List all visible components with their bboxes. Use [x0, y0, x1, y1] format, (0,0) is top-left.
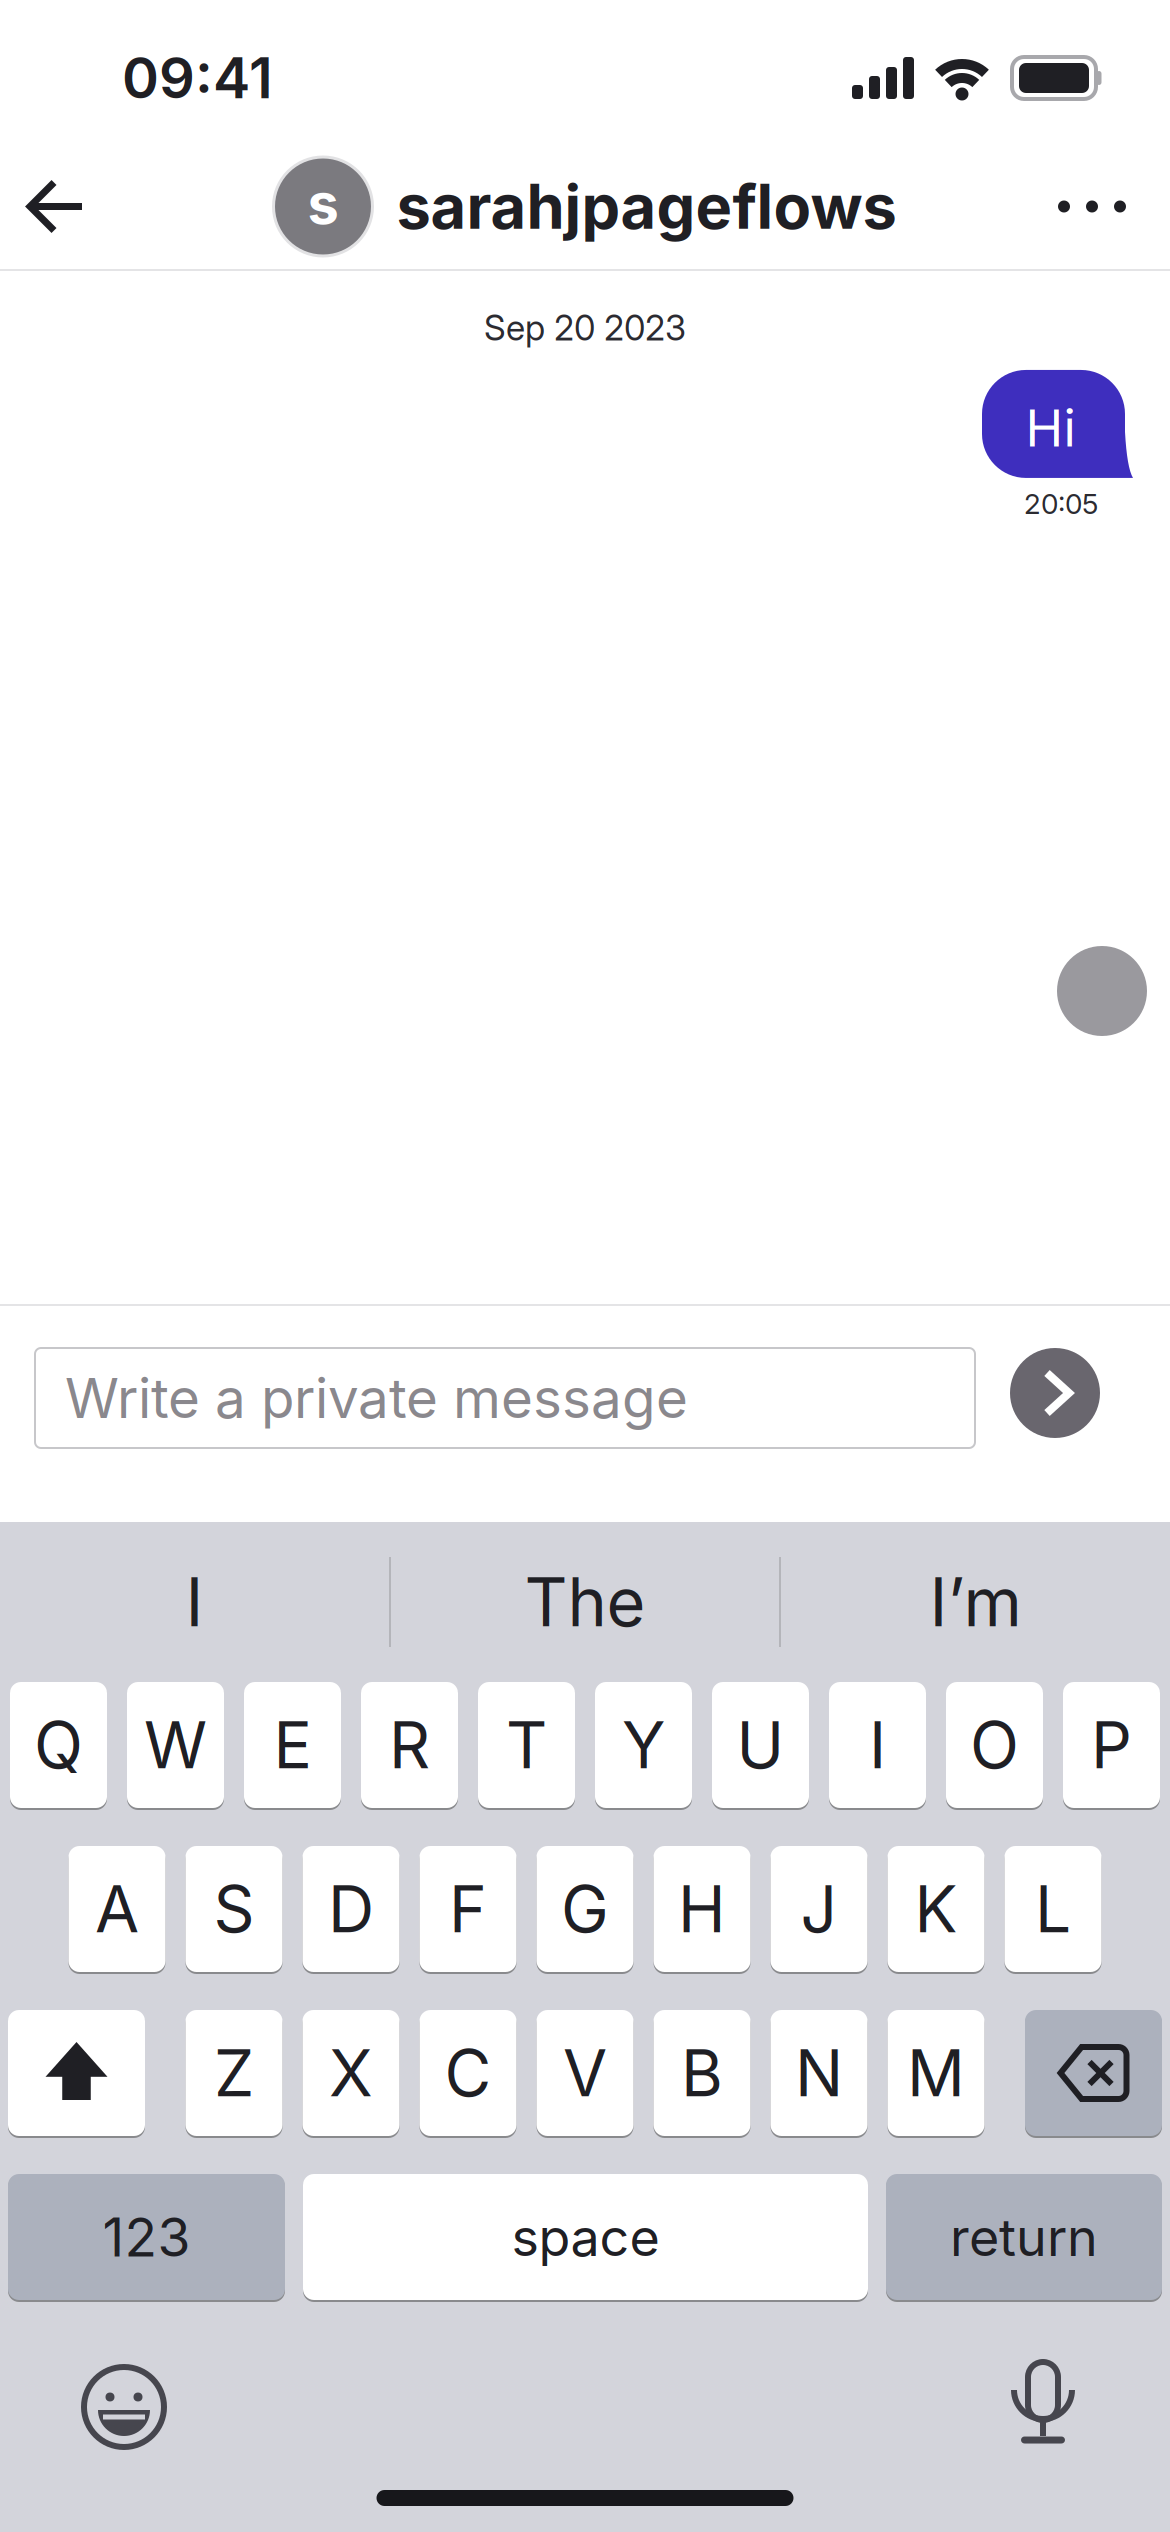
button[interactable]: 123: [8, 2174, 285, 2300]
button[interactable]: N: [770, 2010, 867, 2136]
staticText: space: [511, 2205, 659, 2268]
button[interactable]: B: [653, 2010, 750, 2136]
staticText: I: [869, 1706, 886, 1784]
staticText: return: [950, 2205, 1098, 2268]
button[interactable]: Send: [1010, 1353, 1100, 1443]
button[interactable]: Z: [185, 2010, 282, 2136]
staticText: H: [678, 1870, 726, 1948]
staticText: O: [970, 1706, 1019, 1784]
button[interactable]: H: [653, 1846, 750, 1972]
staticText: G: [561, 1870, 609, 1948]
button[interactable]: Back: [0, 140, 82, 272]
button[interactable]: G: [536, 1846, 633, 1972]
button[interactable]: I: [829, 1682, 926, 1808]
staticText: 20:05: [1024, 487, 1098, 521]
staticText: s: [307, 170, 338, 237]
button[interactable]: Delete: [1025, 2010, 1162, 2136]
button[interactable]: K: [887, 1846, 984, 1972]
staticText: T: [506, 1706, 547, 1784]
staticText: V: [563, 2034, 607, 2112]
button[interactable]: I: [0, 1522, 389, 1682]
staticText: L: [1035, 1870, 1071, 1948]
staticText: I: [185, 1562, 203, 1642]
staticText: U: [736, 1706, 784, 1784]
staticText: Y: [622, 1706, 665, 1784]
staticText: M: [907, 2034, 965, 2112]
button[interactable]: Y: [595, 1682, 692, 1808]
button[interactable]: E: [244, 1682, 341, 1808]
button[interactable]: T: [478, 1682, 575, 1808]
staticText: J: [800, 1870, 837, 1948]
staticText: Q: [34, 1706, 83, 1784]
button[interactable]: More options: [1058, 150, 1170, 262]
staticText: Hi: [1025, 397, 1075, 459]
button[interactable]: O: [946, 1682, 1043, 1808]
button[interactable]: V: [536, 2010, 633, 2136]
button[interactable]: J: [770, 1846, 867, 1972]
staticText: The: [524, 1562, 645, 1642]
button[interactable]: P: [1063, 1682, 1160, 1808]
button[interactable]: M: [887, 2010, 984, 2136]
staticText: I’m: [929, 1562, 1021, 1642]
staticText: X: [329, 2034, 373, 2112]
button[interactable]: W: [127, 1682, 224, 1808]
staticText: 123: [102, 2205, 190, 2269]
button[interactable]: C: [419, 2010, 516, 2136]
button[interactable]: Q: [10, 1682, 107, 1808]
staticText: K: [914, 1870, 957, 1948]
button[interactable]: Emoji: [0, 2362, 169, 2452]
button[interactable]: The: [391, 1522, 779, 1682]
staticText: S: [213, 1870, 254, 1948]
button[interactable]: return: [886, 2174, 1162, 2300]
staticText: A: [95, 1870, 139, 1948]
staticText: C: [444, 2034, 491, 2112]
staticText: 09:41: [122, 44, 273, 112]
staticText: F: [449, 1870, 487, 1948]
button[interactable]: Shift: [8, 2010, 145, 2136]
button[interactable]: S: [185, 1846, 282, 1972]
button[interactable]: space: [303, 2174, 868, 2300]
staticText: Z: [214, 2034, 254, 2112]
button[interactable]: U: [712, 1682, 809, 1808]
button[interactable]: X: [302, 2010, 399, 2136]
staticText: R: [389, 1706, 430, 1784]
button[interactable]: Write a private message: [35, 1348, 975, 1448]
button[interactable]: Dictate: [998, 2362, 1170, 2452]
button[interactable]: I’m: [781, 1522, 1170, 1682]
button[interactable]: R: [361, 1682, 458, 1808]
staticText: P: [1091, 1706, 1132, 1784]
button[interactable]: D: [302, 1846, 399, 1972]
button[interactable]: A: [68, 1846, 165, 1972]
staticText: W: [144, 1706, 207, 1784]
staticText: D: [328, 1870, 374, 1948]
staticText: Sep 20 2023: [484, 307, 686, 349]
button[interactable]: F: [419, 1846, 516, 1972]
staticText: B: [681, 2034, 723, 2112]
staticText: Write a private message: [65, 1365, 688, 1431]
staticText: sarahjpageflows: [396, 169, 896, 244]
staticText: N: [795, 2034, 843, 2112]
staticText: E: [273, 1706, 311, 1784]
button[interactable]: L: [1004, 1846, 1101, 1972]
